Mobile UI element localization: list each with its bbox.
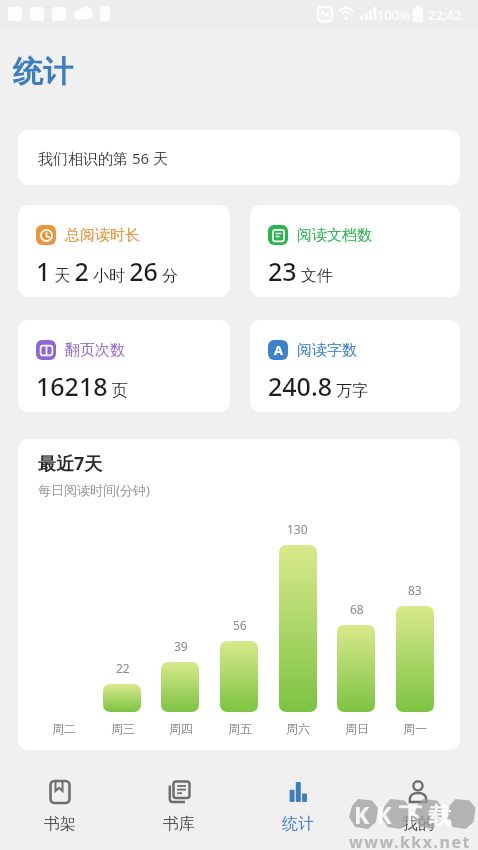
staticText: 16218 页 — [36, 369, 128, 403]
staticText: 22 — [116, 660, 130, 676]
button[interactable]: 翻页次数 — [18, 320, 230, 412]
staticText: 书库 — [163, 814, 195, 834]
staticText: www.kkx.net — [349, 831, 471, 850]
button[interactable]: 我的 — [358, 760, 478, 850]
button[interactable]: 阅读文档数 — [250, 205, 460, 297]
staticText: 统计 — [282, 814, 314, 834]
staticText: 阅读字数 — [297, 341, 357, 360]
staticText: 130 — [287, 521, 308, 537]
staticText: 最近7天 — [38, 451, 103, 476]
staticText: 68 — [350, 601, 364, 617]
button[interactable]: 书库 — [119, 760, 238, 850]
staticText: 1 天 2 小时 26 分 — [36, 254, 179, 288]
button[interactable]: 我们相识的第 56 天 — [18, 130, 460, 185]
staticText: 周一 — [403, 721, 427, 736]
staticText: 我们相识的第 56 天 — [38, 148, 168, 168]
button[interactable]: 统计 — [238, 760, 358, 850]
staticText: 周三 — [111, 721, 135, 736]
staticText: 总阅读时长 — [65, 226, 140, 245]
staticText: 100% — [377, 6, 411, 24]
staticText: 56 — [233, 617, 247, 633]
staticText: 22:42 — [428, 6, 462, 24]
staticText: 统计 — [13, 53, 73, 91]
staticText: 书架 — [44, 814, 76, 834]
button[interactable]: A — [250, 320, 460, 412]
staticText: 我的 — [402, 814, 434, 834]
staticText: 240.8 万字 — [268, 369, 369, 403]
staticText: 周六 — [286, 721, 310, 736]
button[interactable]: 书架 — [0, 760, 119, 850]
staticText: 83 — [408, 582, 422, 598]
staticText: 39 — [174, 638, 188, 654]
staticText: 每日阅读时间(分钟) — [38, 481, 150, 499]
staticText: 周四 — [169, 721, 193, 736]
staticText: 翻页次数 — [65, 341, 125, 360]
staticText: 周五 — [228, 721, 252, 736]
button[interactable]: 最近7天 — [18, 439, 460, 750]
staticText: A — [274, 341, 283, 359]
staticText: 阅读文档数 — [297, 226, 372, 245]
button[interactable]: 总阅读时长 — [18, 205, 230, 297]
staticText: 周二 — [52, 721, 76, 736]
staticText: 周日 — [345, 721, 369, 736]
staticText: 23 文件 — [268, 254, 333, 288]
staticText: KK下载 — [354, 799, 459, 830]
